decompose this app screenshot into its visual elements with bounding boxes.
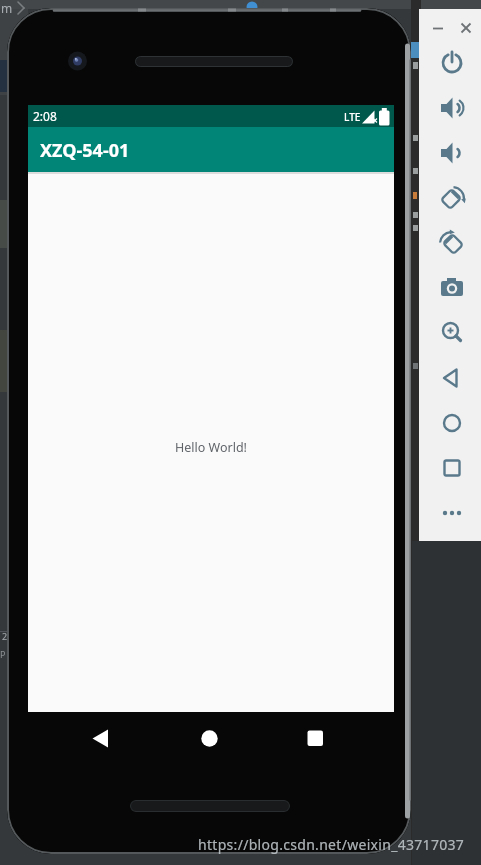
staticText: https://blog.csdn.net/weixin_43717037 xyxy=(198,835,465,854)
staticText: m xyxy=(1,0,13,16)
button[interactable] xyxy=(300,724,330,754)
button[interactable] xyxy=(432,178,472,218)
button[interactable] xyxy=(458,20,474,36)
button[interactable] xyxy=(432,448,472,488)
staticText: P xyxy=(0,648,6,660)
button[interactable] xyxy=(432,43,472,83)
button[interactable] xyxy=(432,358,472,398)
button[interactable] xyxy=(432,223,472,263)
staticText: Hello World! xyxy=(175,439,247,456)
staticText: LTE xyxy=(344,110,361,124)
button[interactable] xyxy=(432,313,472,353)
button[interactable] xyxy=(85,724,115,754)
button[interactable] xyxy=(432,403,472,443)
staticText: 2 xyxy=(2,630,8,642)
button[interactable] xyxy=(432,493,472,533)
button[interactable] xyxy=(28,127,394,172)
button[interactable] xyxy=(430,20,446,36)
staticText: XZQ-54-01 xyxy=(40,138,130,163)
staticText: 2:08 xyxy=(33,108,57,124)
button[interactable] xyxy=(432,268,472,308)
button[interactable] xyxy=(432,88,472,128)
button[interactable] xyxy=(432,133,472,173)
button[interactable] xyxy=(194,724,224,754)
